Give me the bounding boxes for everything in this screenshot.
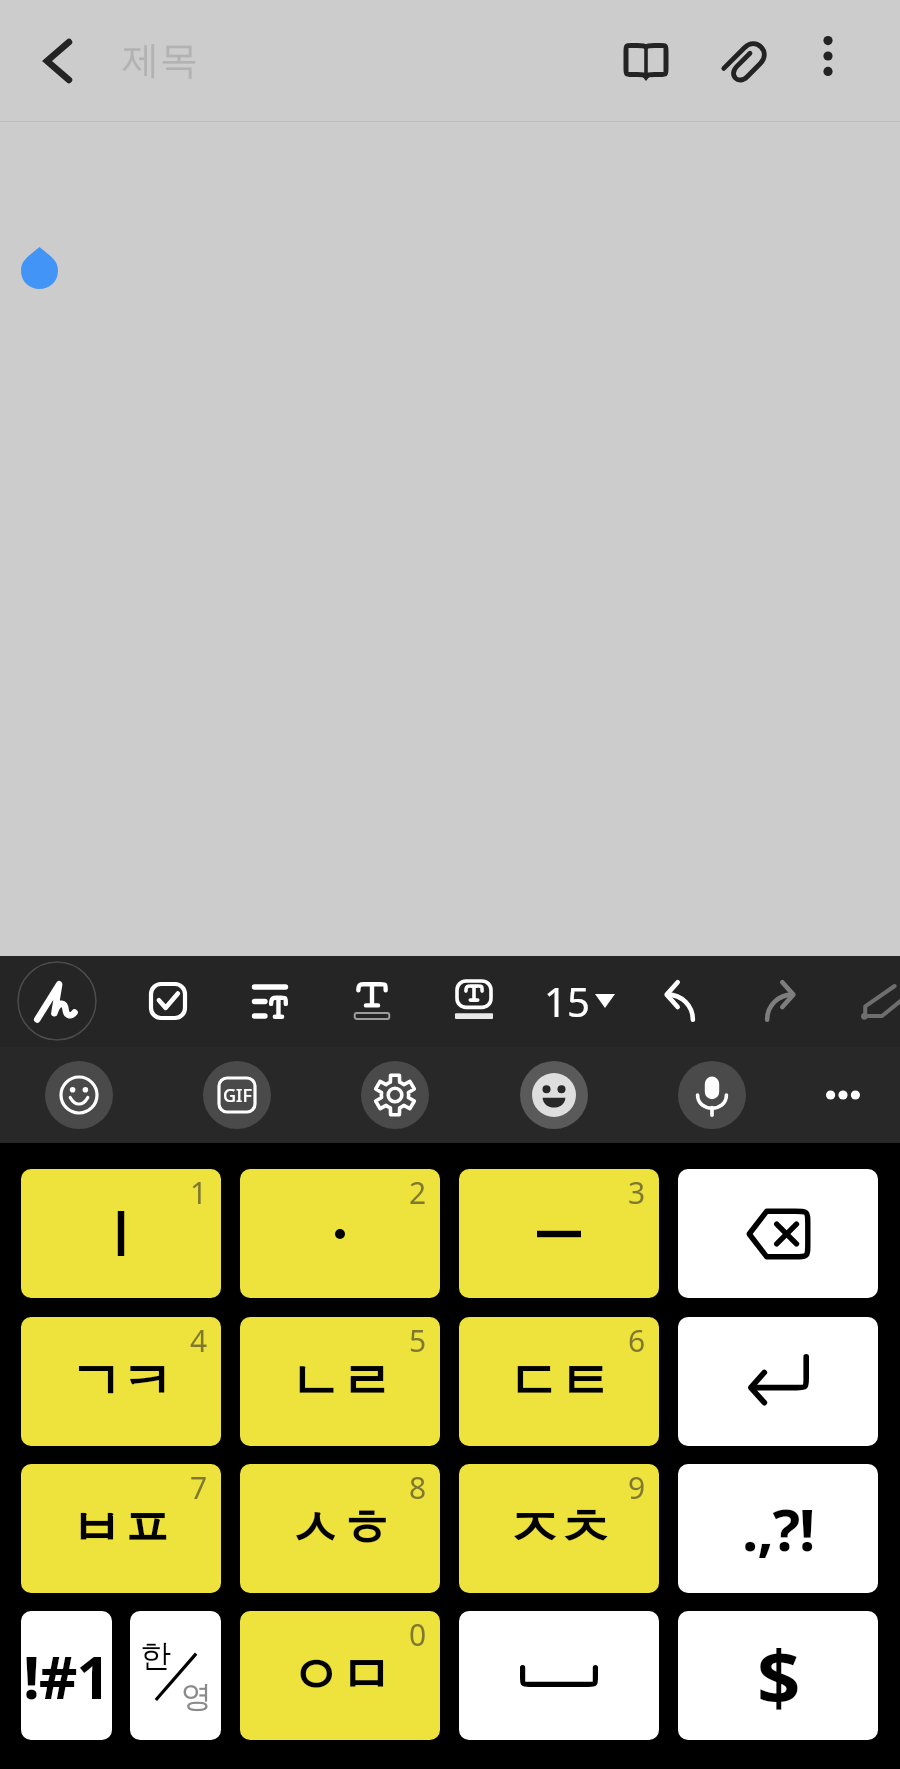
button[interactable]: ㄷㅌ bbox=[459, 1317, 659, 1446]
button[interactable]: !#1 bbox=[21, 1611, 112, 1740]
staticText: ㅈㅊ bbox=[508, 1496, 610, 1562]
button[interactable]: Paragraph style bbox=[235, 966, 305, 1036]
staticText: $ bbox=[757, 1624, 799, 1728]
staticText: 15 bbox=[544, 974, 590, 1028]
button[interactable]: 15 bbox=[544, 970, 628, 1032]
staticText: !#1 bbox=[23, 1635, 110, 1717]
button[interactable]: .,?! bbox=[678, 1464, 878, 1593]
button[interactable]: Redo bbox=[742, 966, 812, 1036]
staticText: 5 bbox=[409, 1320, 427, 1361]
button[interactable]: More bbox=[812, 1064, 874, 1126]
button[interactable]: More options bbox=[792, 20, 864, 92]
button[interactable]: ㅈㅊ bbox=[459, 1464, 659, 1593]
staticText: 영 bbox=[181, 1677, 212, 1716]
button[interactable]: Handwriting bbox=[17, 961, 97, 1041]
button[interactable]: 1 bbox=[21, 1169, 221, 1298]
staticText: 8 bbox=[409, 1467, 427, 1508]
button[interactable]: Pen settings bbox=[846, 970, 900, 1032]
button[interactable]: Voice input bbox=[678, 1061, 746, 1129]
button[interactable]: ㄴㄹ bbox=[240, 1317, 440, 1446]
button[interactable]: 한 bbox=[130, 1611, 221, 1740]
button[interactable]: Checklist bbox=[133, 966, 203, 1036]
button[interactable]: $ bbox=[678, 1611, 878, 1740]
button[interactable]: GIF bbox=[203, 1061, 271, 1129]
staticText: GIF bbox=[223, 1083, 252, 1108]
staticText: ㄴㄹ bbox=[289, 1349, 391, 1415]
button[interactable]: Back bbox=[22, 25, 94, 97]
button[interactable]: ㄱㅋ bbox=[21, 1317, 221, 1446]
button[interactable]: Emoji bbox=[45, 1061, 113, 1129]
button[interactable]: Stickers bbox=[520, 1061, 588, 1129]
button[interactable]: Keyboard settings bbox=[361, 1061, 429, 1129]
staticText: 한 bbox=[140, 1636, 171, 1675]
staticText: ㅇㅁ bbox=[289, 1643, 391, 1709]
button[interactable]: 3 bbox=[459, 1169, 659, 1298]
button[interactable] bbox=[678, 1169, 878, 1298]
button[interactable]: Text color bbox=[337, 966, 407, 1036]
staticText: 7 bbox=[190, 1467, 208, 1508]
staticText: 0 bbox=[409, 1614, 427, 1655]
staticText: 4 bbox=[190, 1320, 208, 1361]
button[interactable]: ㅇㅁ bbox=[240, 1611, 440, 1740]
button[interactable]: Reading mode bbox=[604, 20, 688, 104]
staticText: 2 bbox=[409, 1172, 427, 1213]
button[interactable]: 2 bbox=[240, 1169, 440, 1298]
staticText: ㅂㅍ bbox=[70, 1496, 172, 1562]
button[interactable]: ㅂㅍ bbox=[21, 1464, 221, 1593]
staticText: 제목 bbox=[122, 36, 198, 84]
button[interactable]: Attach file bbox=[704, 20, 788, 104]
staticText: ㄷㅌ bbox=[508, 1349, 610, 1415]
button[interactable]: Text highlight bbox=[439, 966, 509, 1036]
button[interactable] bbox=[678, 1317, 878, 1446]
button[interactable]: Undo bbox=[648, 966, 718, 1036]
staticText: 1 bbox=[190, 1172, 208, 1213]
staticText: ㄱㅋ bbox=[70, 1349, 172, 1415]
staticText: 3 bbox=[628, 1172, 646, 1213]
staticText: 6 bbox=[628, 1320, 646, 1361]
staticText: 9 bbox=[628, 1467, 646, 1508]
button[interactable]: ㅅㅎ bbox=[240, 1464, 440, 1593]
staticText: .,?! bbox=[742, 1489, 815, 1568]
staticText: ㅅㅎ bbox=[289, 1496, 391, 1562]
button[interactable] bbox=[459, 1611, 659, 1740]
